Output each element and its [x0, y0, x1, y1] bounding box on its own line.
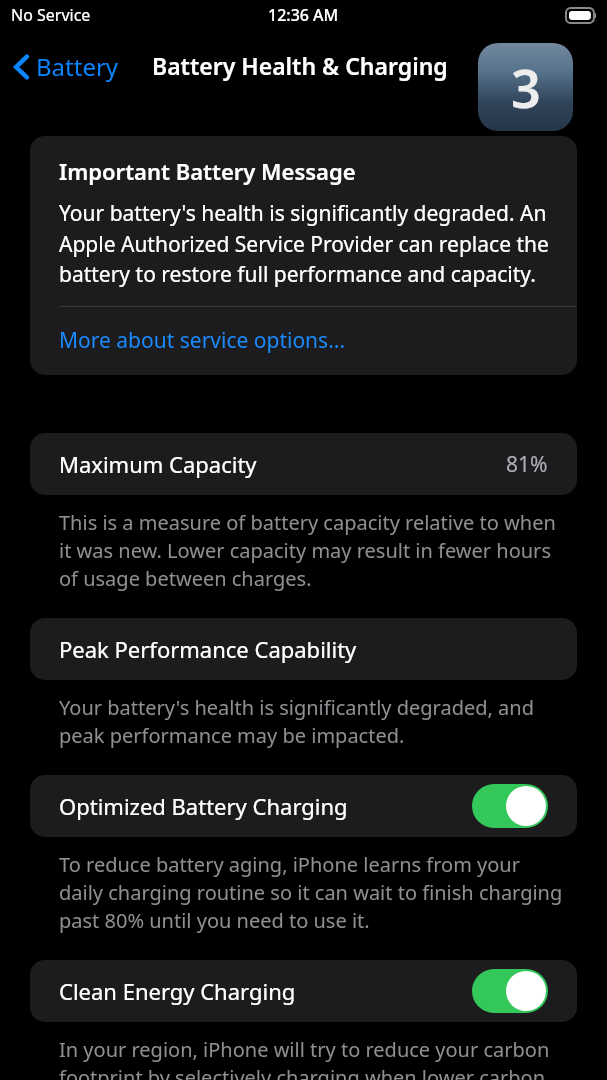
staticText: 81%: [506, 450, 548, 479]
button[interactable]: Clean Energy Charging: [30, 960, 577, 1022]
staticText: 12:36 AM: [268, 4, 339, 26]
staticText: No Service: [11, 4, 91, 26]
button[interactable]: More about service options...: [30, 307, 577, 375]
staticText: 3: [511, 52, 541, 123]
button[interactable]: Clean Energy Charging: [472, 969, 548, 1013]
staticText: Peak Performance Capability: [59, 634, 357, 664]
button[interactable]: Peak Performance Capability: [30, 618, 577, 680]
button[interactable]: Optimized Battery Charging: [30, 775, 577, 837]
staticText: Clean Energy Charging: [59, 976, 296, 1006]
staticText: More about service options...: [59, 326, 346, 355]
button[interactable]: Maximum Capacity: [30, 433, 577, 495]
staticText: Optimized Battery Charging: [59, 791, 348, 821]
staticText: In your region, iPhone will try to reduc…: [59, 1036, 563, 1080]
staticText: Your battery's health is significantly d…: [59, 694, 563, 749]
staticText: Maximum Capacity: [59, 449, 257, 479]
button[interactable]: Battery: [0, 44, 127, 89]
staticText: Battery: [36, 50, 119, 83]
button[interactable]: 3 notifications: [478, 43, 573, 131]
staticText: This is a measure of battery capacity re…: [59, 509, 563, 592]
button[interactable]: Optimized Battery Charging: [472, 784, 548, 828]
staticText: Battery Health & Charging: [152, 50, 448, 81]
staticText: To reduce battery aging, iPhone learns f…: [59, 851, 563, 934]
staticText: Important Battery Message: [59, 156, 356, 186]
staticText: Your battery's health is significantly d…: [59, 199, 557, 288]
